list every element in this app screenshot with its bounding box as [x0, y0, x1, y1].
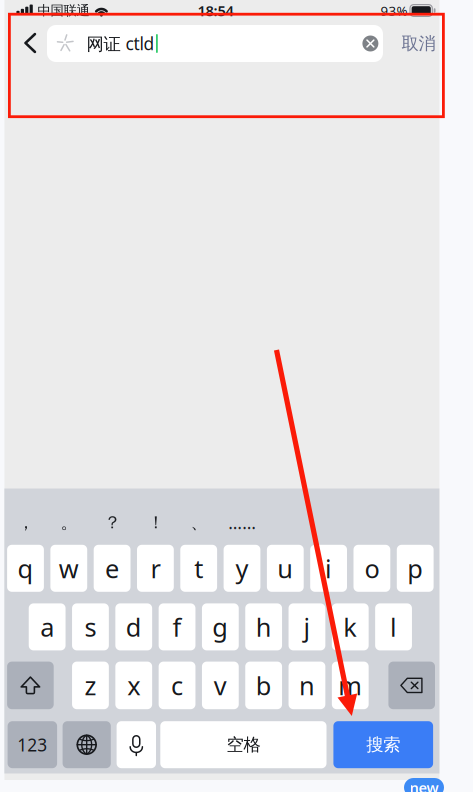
- staticText: l: [390, 610, 397, 644]
- staticText: ！: [147, 512, 164, 533]
- staticText: a: [40, 610, 54, 644]
- staticText: o: [364, 551, 379, 585]
- button[interactable]: Switch keyboard: [63, 721, 111, 768]
- button[interactable]: d: [115, 603, 152, 650]
- button[interactable]: s: [72, 603, 109, 650]
- button[interactable]: m: [332, 662, 369, 709]
- button[interactable]: ……: [221, 505, 264, 539]
- button[interactable]: b: [245, 662, 282, 709]
- button[interactable]: c: [159, 662, 195, 709]
- staticText: r: [150, 551, 160, 585]
- staticText: y: [235, 551, 248, 585]
- button[interactable]: v: [202, 662, 239, 709]
- staticText: s: [84, 610, 96, 644]
- staticText: 123: [17, 733, 47, 756]
- button[interactable]: Clear text: [355, 28, 385, 58]
- staticText: i: [325, 551, 332, 585]
- staticText: t: [194, 551, 203, 585]
- button[interactable]: u: [267, 545, 304, 592]
- button[interactable]: p: [397, 545, 434, 592]
- button[interactable]: 取消: [394, 25, 442, 62]
- button[interactable]: 。: [47, 505, 91, 539]
- staticText: 。: [60, 512, 77, 533]
- button[interactable]: [8, 721, 57, 768]
- staticText: f: [172, 610, 181, 644]
- button[interactable]: Delete: [388, 662, 435, 709]
- button[interactable]: i: [310, 545, 347, 592]
- button[interactable]: Back: [13, 24, 47, 62]
- staticText: c: [171, 669, 183, 702]
- staticText: v: [214, 669, 227, 702]
- button[interactable]: k: [332, 603, 369, 650]
- button[interactable]: z: [72, 662, 109, 709]
- staticText: z: [84, 669, 96, 702]
- staticText: 中国联通: [37, 2, 89, 19]
- staticText: 网证 ctld: [86, 32, 154, 55]
- button[interactable]: t: [180, 545, 217, 592]
- staticText: ？: [104, 512, 121, 533]
- button[interactable]: e: [94, 545, 130, 592]
- staticText: h: [256, 610, 272, 644]
- staticText: ，: [17, 512, 34, 533]
- button[interactable]: ！: [134, 505, 177, 539]
- staticText: d: [126, 610, 142, 644]
- button[interactable]: o: [353, 545, 390, 592]
- staticText: q: [17, 551, 33, 585]
- staticText: k: [343, 610, 357, 644]
- button[interactable]: a: [29, 603, 66, 650]
- button[interactable]: f: [159, 603, 195, 650]
- staticText: new: [409, 778, 438, 792]
- staticText: 18:54: [197, 1, 233, 20]
- staticText: n: [299, 669, 315, 702]
- button[interactable]: w: [50, 545, 87, 592]
- staticText: 取消: [401, 33, 435, 54]
- button[interactable]: ，: [4, 505, 47, 539]
- button[interactable]: x: [115, 662, 152, 709]
- staticText: ……: [228, 511, 256, 534]
- staticText: 93%: [380, 2, 407, 19]
- button[interactable]: n: [288, 662, 325, 709]
- button[interactable]: Shift: [7, 662, 54, 709]
- button[interactable]: g: [202, 603, 239, 650]
- button[interactable]: 搜索: [333, 721, 433, 768]
- staticText: w: [59, 551, 79, 585]
- staticText: e: [105, 551, 119, 585]
- button[interactable]: r: [137, 545, 174, 592]
- button[interactable]: 空格: [160, 721, 326, 768]
- staticText: b: [256, 669, 272, 702]
- staticText: 、: [190, 512, 207, 533]
- staticText: x: [127, 669, 140, 702]
- staticText: m: [338, 669, 362, 702]
- button[interactable]: l: [375, 603, 412, 650]
- button[interactable]: ？: [91, 505, 134, 539]
- staticText: u: [277, 551, 293, 585]
- button[interactable]: j: [288, 603, 325, 650]
- button[interactable]: Dictate: [117, 721, 156, 768]
- staticText: j: [303, 610, 310, 644]
- button[interactable]: 、: [177, 505, 221, 539]
- staticText: g: [212, 610, 228, 644]
- button[interactable]: y: [224, 545, 260, 592]
- button[interactable]: q: [7, 545, 44, 592]
- staticText: 空格: [226, 734, 260, 755]
- staticText: p: [407, 551, 423, 585]
- staticText: 搜索: [366, 734, 400, 755]
- button[interactable]: h: [245, 603, 282, 650]
